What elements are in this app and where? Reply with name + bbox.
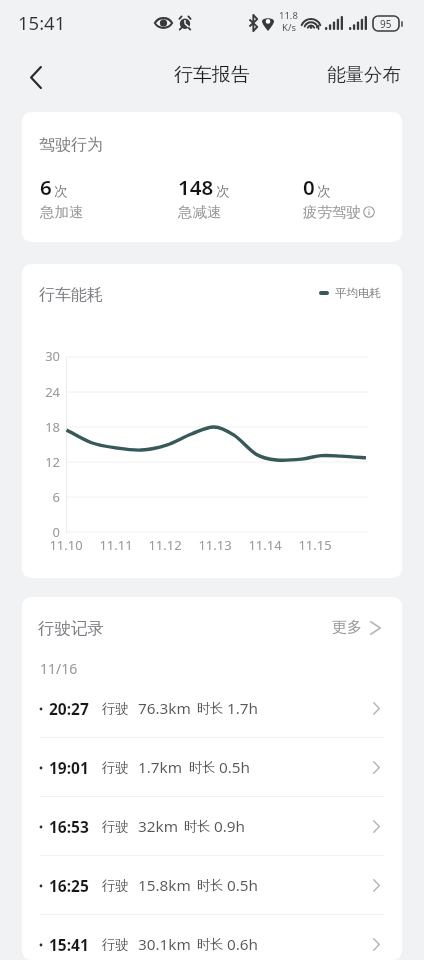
button[interactable]: 更多 xyxy=(324,611,389,644)
staticText: 行车报告 xyxy=(174,63,250,87)
staticText: 16:53 xyxy=(49,816,89,837)
staticText: K/s xyxy=(282,21,296,34)
staticText: 1.7h xyxy=(227,698,259,719)
staticText: 能量分布 xyxy=(327,63,401,86)
staticText: 11.13 xyxy=(191,536,239,554)
staticText: 11.12 xyxy=(141,536,189,554)
staticText: 15.8km xyxy=(138,875,191,896)
staticText: 6 xyxy=(22,488,60,506)
staticText: 11.14 xyxy=(241,536,289,554)
staticText: 11.11 xyxy=(92,536,140,554)
staticText: 驾驶行为 xyxy=(39,135,103,155)
staticText: 19:01 xyxy=(49,757,89,778)
staticText: 行驶 xyxy=(102,700,128,717)
staticText: 行驶 xyxy=(102,877,128,894)
staticText: 16:25 xyxy=(49,875,89,896)
staticText: 95 xyxy=(380,17,392,31)
button[interactable]: 16:53 xyxy=(22,797,402,856)
staticText: 次 xyxy=(216,183,230,200)
staticText: 18 xyxy=(22,418,60,436)
staticText: 时长 xyxy=(197,936,223,953)
button[interactable]: 19:01 xyxy=(22,738,402,797)
staticText: 0 xyxy=(22,523,60,541)
staticText: 1.7km xyxy=(138,757,183,778)
staticText: 行驶 xyxy=(102,759,128,776)
staticText: 148 xyxy=(178,173,214,201)
staticText: 11.8 xyxy=(279,9,298,22)
staticText: 0.5h xyxy=(219,757,251,778)
staticText: 0.5h xyxy=(227,875,259,896)
staticText: 24 xyxy=(22,383,60,401)
staticText: 行驶 xyxy=(102,818,128,835)
staticText: 行驶 xyxy=(102,936,128,953)
staticText: 平均电耗 xyxy=(335,286,381,300)
button[interactable]: 20:27 xyxy=(22,679,402,738)
staticText: 0.6h xyxy=(227,934,259,955)
button[interactable]: 16:25 xyxy=(22,856,402,915)
staticText: 更多 xyxy=(332,618,362,637)
staticText: 0 xyxy=(303,173,315,201)
staticText: 12 xyxy=(22,453,60,471)
staticText: 急减速 xyxy=(178,203,222,221)
staticText: 时长 xyxy=(184,818,210,835)
staticText: 11.15 xyxy=(291,536,339,554)
staticText: 11/16 xyxy=(40,659,78,678)
staticText: 6 xyxy=(40,173,52,201)
staticText: 32km xyxy=(138,816,178,837)
staticText: 15:41 xyxy=(18,10,66,35)
staticText: 行车能耗 xyxy=(39,285,103,305)
staticText: 30 xyxy=(22,347,60,365)
staticText: 20:27 xyxy=(49,698,89,719)
staticText: 急加速 xyxy=(40,203,84,221)
staticText: 时长 xyxy=(189,759,215,776)
staticText: 30.1km xyxy=(138,934,191,955)
staticText: 次 xyxy=(54,183,68,200)
staticText: 疲劳驾驶 xyxy=(303,203,361,221)
button[interactable]: Back xyxy=(14,53,58,97)
staticText: 次 xyxy=(317,183,331,200)
staticText: 行驶记录 xyxy=(38,618,104,639)
staticText: 11.10 xyxy=(42,536,90,554)
button[interactable]: Info about fatigue driving xyxy=(363,206,375,218)
staticText: 时长 xyxy=(197,700,223,717)
staticText: 时长 xyxy=(197,877,223,894)
staticText: 76.3km xyxy=(138,698,191,719)
button[interactable]: 15:41 xyxy=(22,915,402,960)
staticText: 15:41 xyxy=(49,934,89,955)
staticText: 0.9h xyxy=(214,816,246,837)
button[interactable]: 能量分布 xyxy=(317,55,424,94)
